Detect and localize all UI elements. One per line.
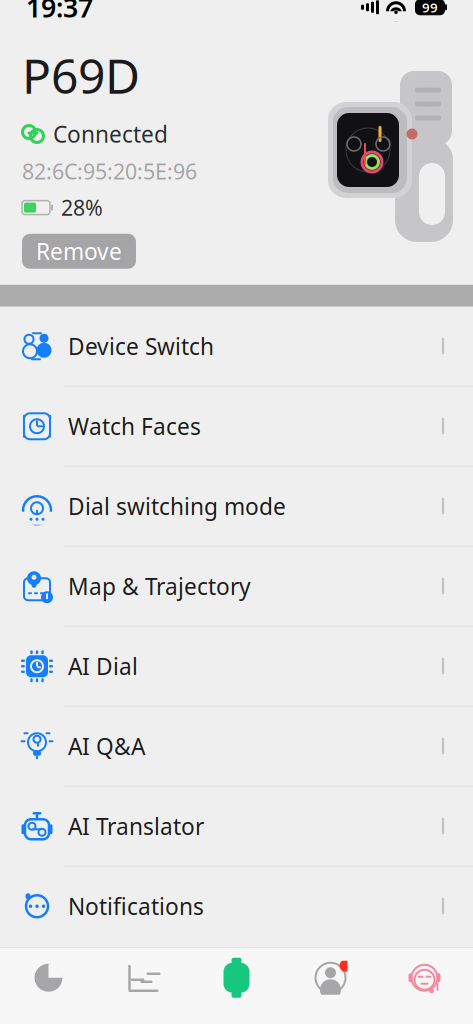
staticText: 99 — [422, 0, 438, 16]
button[interactable]: Device Switch — [0, 307, 473, 387]
staticText: Map & Trajectory — [68, 571, 251, 601]
staticText: P69D — [22, 43, 140, 107]
button[interactable]: Map & Trajectory — [0, 547, 473, 627]
button[interactable]: AI Translator — [0, 787, 473, 867]
staticText: AI Q&A — [68, 731, 145, 761]
staticText: AI Dial — [68, 651, 138, 681]
button[interactable]: Support — [377, 951, 471, 1005]
button[interactable]: AI Q&A — [0, 707, 473, 787]
staticText: AI Translator — [68, 811, 204, 841]
button[interactable]: Remove — [22, 234, 136, 269]
staticText: Device Switch — [68, 331, 214, 361]
staticText: 82:6C:95:20:5E:96 — [22, 157, 197, 185]
staticText: Remove — [36, 236, 122, 266]
button[interactable]: Device — [189, 951, 283, 1005]
button[interactable]: Watch Faces — [0, 387, 473, 467]
button[interactable]: Dial switching mode — [0, 467, 473, 547]
button[interactable]: Profile — [283, 951, 377, 1005]
button[interactable]: Trends — [95, 951, 189, 1005]
staticText: Watch Faces — [68, 411, 201, 441]
staticText: Dial switching mode — [68, 491, 286, 521]
staticText: 28% — [61, 193, 103, 222]
button[interactable]: AI Dial — [0, 627, 473, 707]
staticText: Notifications — [68, 891, 204, 921]
staticText: 19:37 — [26, 0, 93, 25]
button[interactable]: Notifications — [0, 867, 473, 947]
staticText: Connected — [53, 119, 168, 149]
button[interactable]: Statistics — [1, 951, 95, 1005]
